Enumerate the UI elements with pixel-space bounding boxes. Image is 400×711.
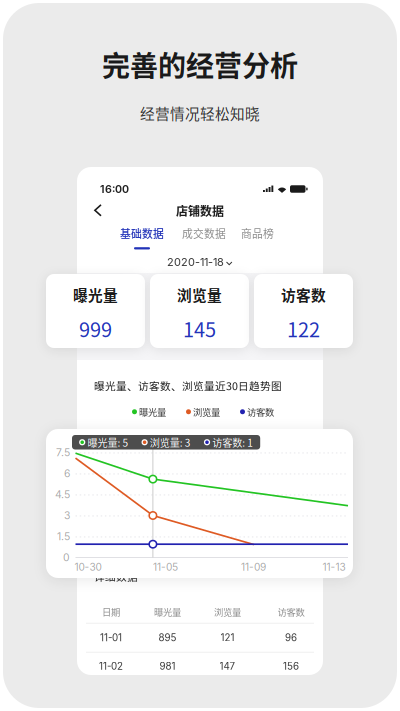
staticText: 895	[158, 632, 176, 644]
button[interactable]: 曝光量	[46, 274, 145, 348]
staticText: 曝光量	[73, 284, 118, 305]
staticText: 3	[64, 509, 70, 522]
staticText: 96	[285, 632, 297, 644]
staticText: 店铺数据	[176, 202, 224, 219]
staticText: 曝光量、访客数、浏览量近30日趋势图	[94, 378, 282, 393]
staticText: 10-30	[74, 561, 101, 573]
staticText: 121	[220, 632, 234, 644]
button[interactable]: 成交数据	[182, 228, 226, 247]
staticText: 曝光量: 5	[85, 435, 128, 450]
button[interactable]: 浏览量	[150, 274, 249, 348]
staticText: 访客数	[281, 284, 326, 305]
staticText: 曝光量	[137, 405, 166, 418]
staticText: 成交数据	[182, 225, 226, 241]
staticText: 147	[219, 660, 235, 672]
staticText: 16:00	[100, 182, 129, 195]
staticText: 浏览量	[177, 284, 222, 305]
staticText: 访客数	[277, 605, 304, 618]
staticText: 曝光量	[154, 605, 181, 618]
staticText: 基础数据	[120, 225, 164, 241]
staticText: 7.5	[56, 446, 70, 459]
staticText: 981	[159, 660, 175, 672]
staticText: 2020-11-18	[167, 255, 224, 269]
staticText: 11-05	[153, 561, 178, 573]
staticText: 浏览量	[214, 605, 241, 618]
button[interactable]: 访客数	[254, 274, 353, 348]
staticText: 0	[63, 551, 70, 564]
staticText: 4.5	[55, 488, 70, 501]
staticText: 11-02	[99, 660, 123, 672]
staticText: 完善的经营分析	[102, 44, 298, 84]
staticText: 浏览量: 3	[148, 435, 191, 450]
button[interactable]: Back	[89, 201, 107, 220]
staticText: 访客数	[245, 405, 274, 418]
button[interactable]: 商品榜	[241, 228, 274, 247]
staticText: 访客数: 1	[210, 435, 253, 450]
staticText: 999	[79, 314, 112, 343]
staticText: 6	[64, 467, 70, 480]
staticText: 商品榜	[241, 225, 274, 241]
staticText: 145	[183, 314, 216, 343]
staticText: 11-13	[323, 561, 346, 573]
button[interactable]: 基础数据	[120, 228, 164, 247]
staticText: 详细数据	[94, 568, 138, 584]
staticText: 1.5	[57, 530, 70, 543]
staticText: 11-01	[100, 632, 122, 644]
button[interactable]: 2020-11-18	[167, 256, 233, 268]
staticText: 156	[283, 660, 299, 672]
staticText: 11-09	[241, 561, 266, 573]
staticText: 浏览量	[191, 405, 220, 418]
staticText: 122	[287, 314, 320, 343]
staticText: 经营情况轻松知晓	[140, 102, 260, 124]
staticText: 日期	[102, 605, 120, 618]
